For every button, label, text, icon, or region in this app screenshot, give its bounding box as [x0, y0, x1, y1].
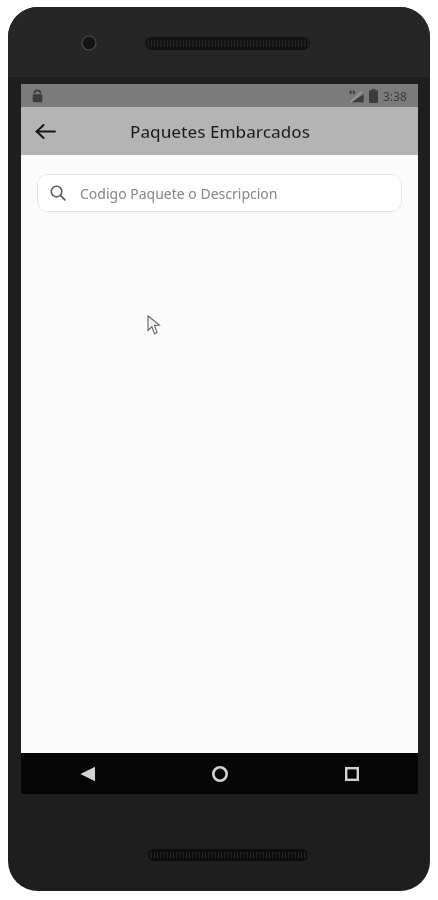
button[interactable]: Codigo Paquete o Descripcion — [37, 174, 402, 212]
button[interactable]: Recent apps — [286, 753, 418, 794]
staticText: 3:38 — [383, 88, 407, 104]
staticText: Paquetes Embarcados — [130, 120, 310, 143]
staticText: Codigo Paquete o Descripcion — [80, 184, 278, 203]
button[interactable]: Back — [21, 107, 69, 155]
button[interactable]: Home — [154, 753, 286, 794]
button[interactable]: Back — [21, 753, 154, 794]
